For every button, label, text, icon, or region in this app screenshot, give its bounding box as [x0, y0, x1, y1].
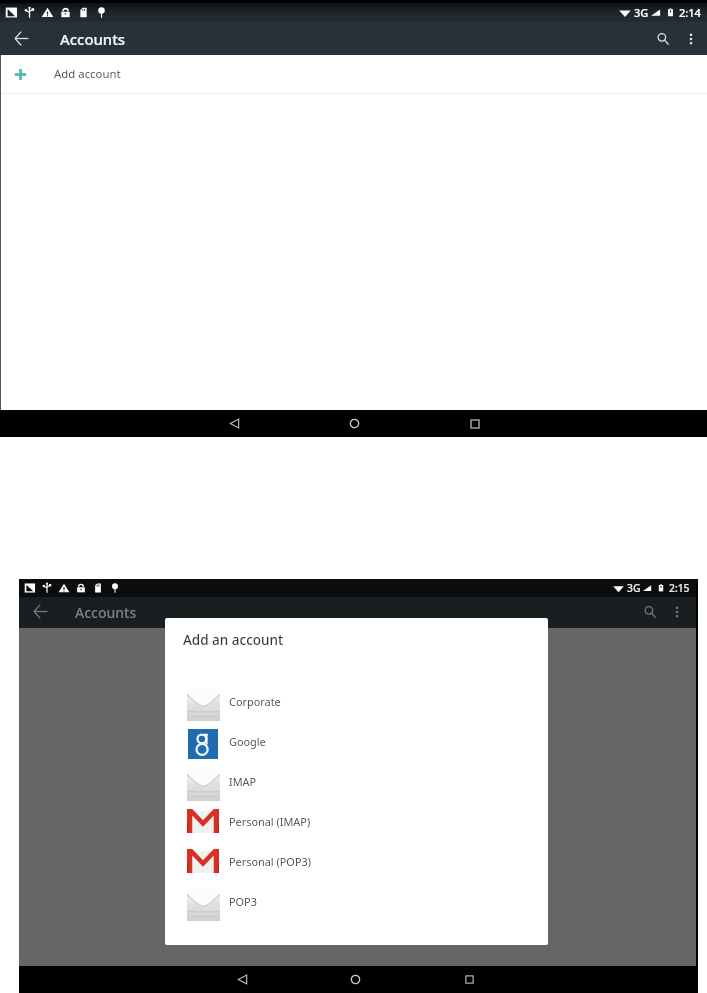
staticText: 3G	[634, 5, 649, 20]
button[interactable]: Personal (IMAP)	[165, 804, 548, 844]
staticText: Add an account	[183, 631, 284, 649]
staticText: IMAP	[229, 774, 257, 789]
button[interactable]: More options	[662, 597, 691, 626]
staticText: 3G	[627, 581, 641, 595]
button[interactable]: IMAP	[165, 764, 548, 804]
staticText: Google	[229, 734, 266, 749]
button[interactable]: Home	[341, 410, 368, 437]
staticText: POP3	[229, 894, 257, 909]
button[interactable]: Recents	[456, 966, 483, 993]
staticText: Corporate	[229, 694, 281, 709]
button[interactable]: Corporate	[165, 684, 548, 724]
button[interactable]: Add account	[1, 55, 707, 93]
button[interactable]: Recents	[461, 410, 488, 437]
button[interactable]: Search	[635, 597, 664, 626]
staticText: Personal (IMAP)	[229, 814, 311, 829]
button[interactable]: Home	[342, 966, 369, 993]
staticText: Personal (POP3)	[229, 854, 311, 869]
button[interactable]: POP3	[165, 884, 548, 924]
staticText: 2:15	[669, 581, 690, 595]
button[interactable]: Search	[646, 22, 679, 55]
button[interactable]: Personal (POP3)	[165, 844, 548, 884]
staticText: Add account	[54, 66, 121, 82]
button[interactable]: Navigate up	[5, 22, 38, 55]
staticText: Accounts	[60, 29, 126, 49]
button[interactable]: More options	[674, 22, 707, 55]
button[interactable]: Google	[165, 724, 548, 764]
staticText: Accounts	[75, 603, 137, 622]
button[interactable]: Navigate up	[26, 597, 55, 626]
button[interactable]: Back	[229, 966, 256, 993]
button[interactable]: Back	[221, 410, 248, 437]
staticText: 2:14	[679, 5, 701, 20]
